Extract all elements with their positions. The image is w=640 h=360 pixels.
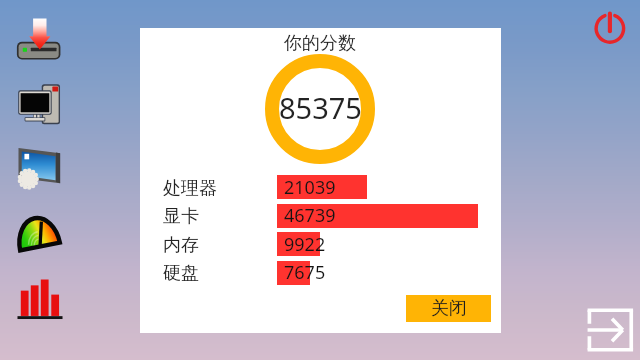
staticText: 硬盘: [163, 262, 199, 285]
staticText: 你的分数: [140, 32, 500, 58]
button[interactable]: Display settings: [17, 147, 62, 191]
button[interactable]: Benchmark: [18, 209, 62, 255]
staticText: 内存: [163, 234, 199, 257]
staticText: 85375: [279, 88, 362, 127]
staticText: 21039: [284, 175, 336, 200]
staticText: 处理器: [163, 177, 217, 200]
button[interactable]: Exit: [585, 305, 635, 355]
staticText: 关闭: [431, 297, 467, 320]
button[interactable]: Computer: [16, 82, 62, 126]
button[interactable]: 关闭: [406, 295, 491, 322]
staticText: 显卡: [163, 205, 199, 228]
staticText: 46739: [284, 203, 336, 228]
button[interactable]: Power: [592, 10, 628, 46]
staticText: 9922: [284, 232, 326, 257]
button[interactable]: Install: [16, 17, 61, 61]
button[interactable]: Results: [16, 277, 64, 321]
staticText: 7675: [284, 260, 326, 285]
